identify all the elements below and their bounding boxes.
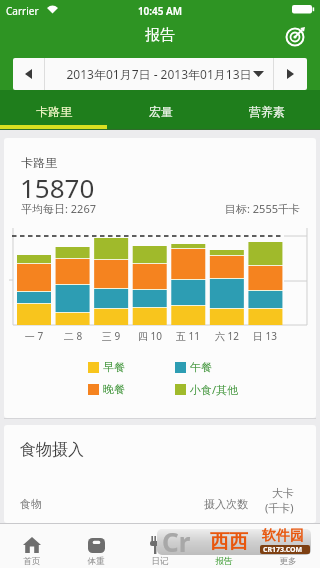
- staticText: 食物摄入: [20, 440, 84, 460]
- staticText: (千卡): [265, 500, 294, 515]
- staticText: 三 9: [91, 329, 131, 343]
- staticText: 软件园: [262, 527, 304, 545]
- staticText: 更多: [268, 556, 308, 567]
- staticText: 午餐: [190, 360, 212, 374]
- staticText: 五 11: [168, 329, 208, 343]
- staticText: 2013年01月7日 - 2013年01月13日: [45, 66, 273, 82]
- staticText: 大卡: [272, 486, 294, 500]
- staticText: 早餐: [103, 360, 125, 374]
- staticText: 晚餐: [103, 382, 125, 396]
- staticText: 报告: [0, 26, 320, 45]
- staticText: 目标: 2555千卡: [0, 201, 300, 216]
- button[interactable]: 卡路里: [0, 90, 107, 129]
- staticText: 一 7: [14, 329, 54, 343]
- staticText: 日 13: [245, 329, 285, 343]
- staticText: 摄入次数: [204, 497, 248, 511]
- staticText: 平均每日: 2267: [21, 201, 96, 216]
- staticText: Carrier: [6, 4, 39, 18]
- staticText: 首页: [12, 556, 52, 567]
- button[interactable]: [68, 524, 124, 568]
- staticText: 六 12: [207, 329, 247, 343]
- staticText: 体重: [76, 556, 116, 567]
- staticText: 10:45 AM: [0, 4, 320, 18]
- staticText: 西西: [210, 530, 248, 554]
- staticText: 四 10: [130, 329, 170, 343]
- button[interactable]: 营养素: [213, 90, 320, 129]
- staticText: 小食/其他: [190, 382, 239, 397]
- staticText: 卡路里: [36, 104, 72, 119]
- button[interactable]: [274, 58, 307, 90]
- staticText: 15870: [20, 170, 95, 205]
- button[interactable]: [260, 524, 316, 568]
- staticText: 宏量: [149, 104, 173, 119]
- button[interactable]: [132, 524, 188, 568]
- staticText: 报告: [204, 556, 244, 567]
- staticText: 二 8: [53, 329, 93, 343]
- staticText: 卡路里: [21, 155, 57, 170]
- staticText: 日记: [140, 556, 180, 567]
- button[interactable]: [196, 524, 252, 568]
- button[interactable]: [4, 524, 60, 568]
- button[interactable]: [13, 58, 44, 90]
- button[interactable]: 宏量: [107, 90, 214, 129]
- staticText: Cr: [162, 524, 191, 559]
- button[interactable]: [286, 26, 306, 46]
- staticText: CR173.COM: [263, 545, 303, 555]
- staticText: 食物: [20, 497, 42, 511]
- staticText: 营养素: [249, 104, 285, 119]
